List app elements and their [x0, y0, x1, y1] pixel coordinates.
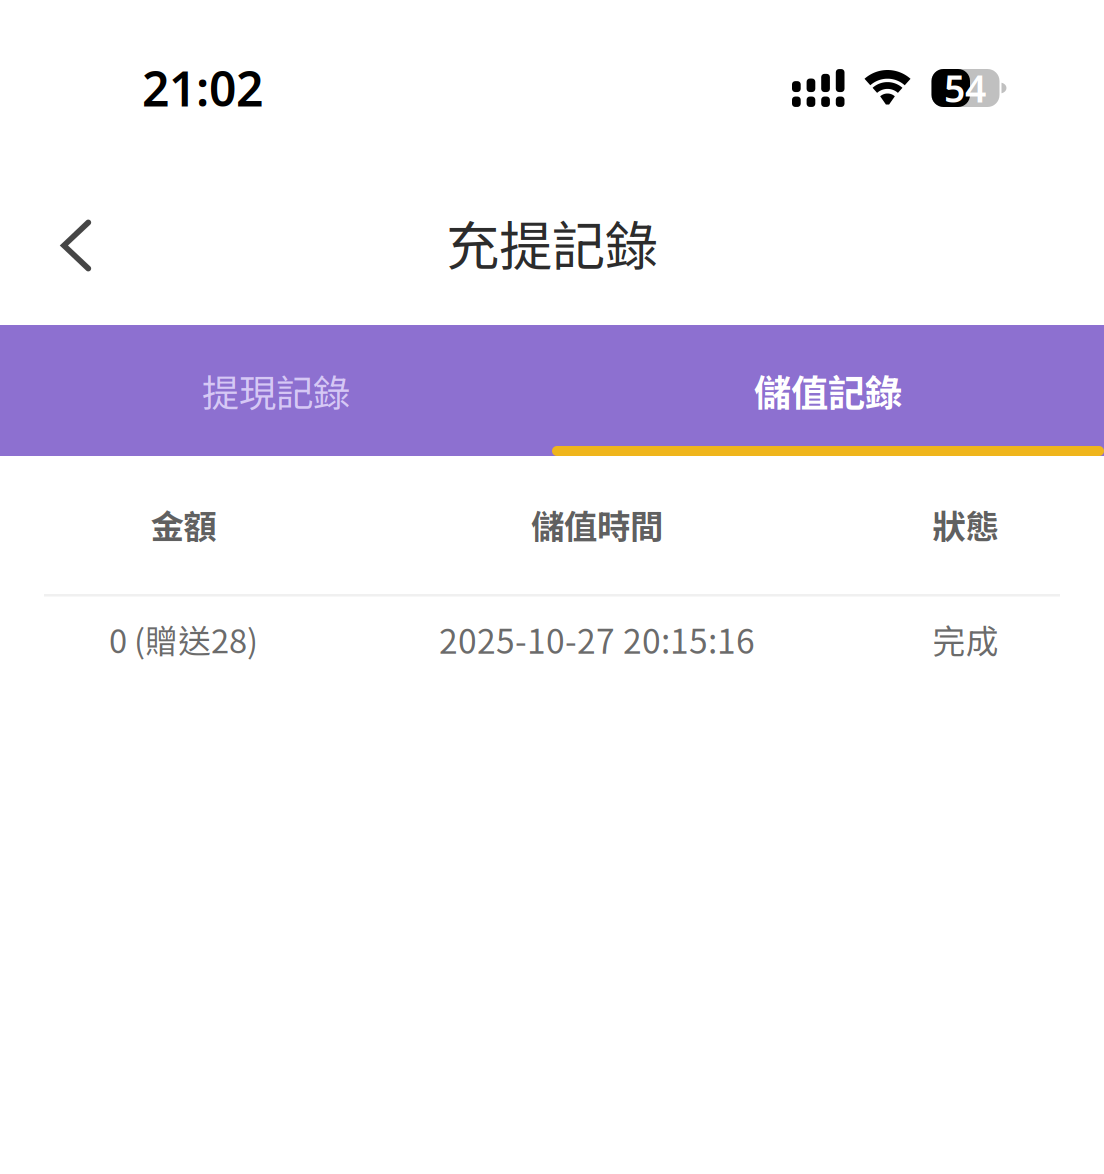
button[interactable]: 提現記錄	[0, 325, 552, 456]
staticText: 儲值記錄	[754, 363, 902, 418]
button[interactable]: Back	[29, 198, 123, 292]
button[interactable]: 0 (贈送28)	[0, 596, 1104, 659]
staticText: 狀態	[932, 500, 998, 549]
staticText: 充提記錄	[446, 204, 658, 281]
staticText: 21:02	[142, 56, 263, 120]
staticText: 金額	[150, 500, 216, 549]
staticText: 0 (贈送28)	[109, 615, 258, 663]
staticText: 2025-10-27 20:15:16	[439, 615, 755, 663]
staticText: 完成	[932, 615, 998, 663]
staticText: 儲值時間	[531, 500, 663, 549]
staticText: 54	[944, 63, 986, 113]
staticText: 提現記錄	[202, 363, 350, 418]
button[interactable]: 儲值記錄	[552, 325, 1104, 456]
